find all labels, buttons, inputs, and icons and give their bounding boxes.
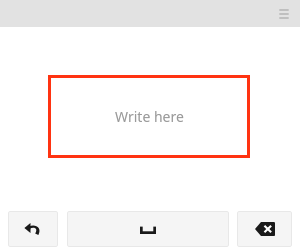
staticText: Write here — [115, 107, 184, 126]
button[interactable]: Backspace — [237, 211, 292, 247]
button[interactable]: Menu — [274, 4, 294, 24]
button[interactable]: Space — [67, 211, 229, 247]
button[interactable]: Write here — [48, 75, 250, 158]
button[interactable]: Undo — [8, 211, 58, 247]
